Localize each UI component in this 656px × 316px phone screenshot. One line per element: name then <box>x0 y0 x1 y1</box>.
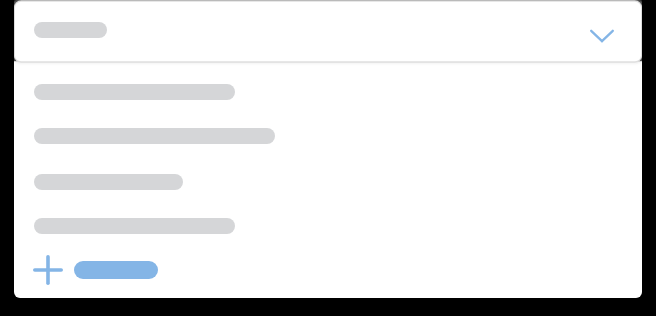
button[interactable]: Menu option <box>14 202 642 246</box>
button[interactable]: Menu option <box>14 158 642 202</box>
button[interactable]: Menu option <box>14 112 642 156</box>
button[interactable]: Select field <box>14 2 642 61</box>
button[interactable]: Menu option <box>14 68 642 112</box>
button[interactable]: Add new entry <box>14 247 642 291</box>
button[interactable]: Collapse dropdown <box>586 23 618 49</box>
